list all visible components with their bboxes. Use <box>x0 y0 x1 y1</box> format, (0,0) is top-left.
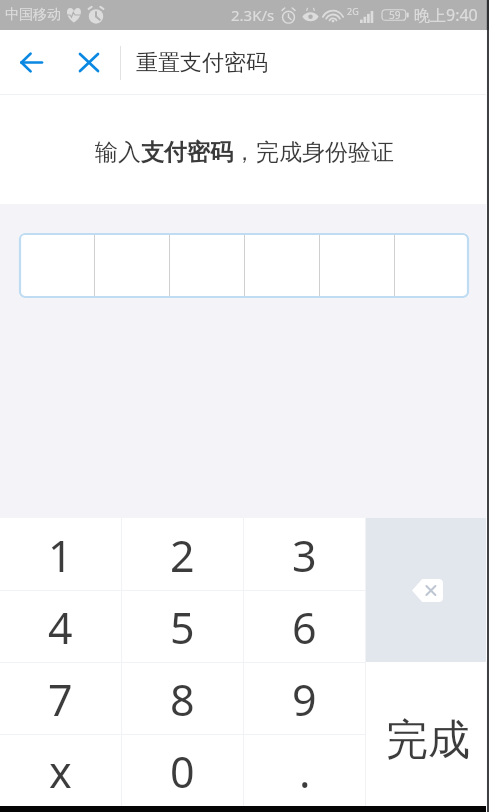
button[interactable]: x <box>0 735 121 806</box>
button[interactable] <box>395 233 469 298</box>
staticText: 59 <box>389 8 401 22</box>
button[interactable]: 5 <box>122 591 243 662</box>
button[interactable]: Back <box>0 30 62 95</box>
button[interactable]: 8 <box>122 663 243 734</box>
staticText: x <box>49 742 72 801</box>
button[interactable]: 9 <box>244 663 365 734</box>
button[interactable]: 4 <box>0 591 121 662</box>
button[interactable] <box>19 233 94 298</box>
button[interactable]: 0 <box>122 735 243 806</box>
button[interactable]: 3 <box>244 518 365 590</box>
button[interactable]: 6 <box>244 591 365 662</box>
staticText: 1 <box>48 526 73 585</box>
staticText: 输入支付密码，完成身份验证 <box>95 138 394 167</box>
staticText: 0 <box>170 742 195 801</box>
staticText: 完成 <box>386 714 470 767</box>
button[interactable]: Close <box>62 30 120 95</box>
staticText: 3 <box>292 526 317 585</box>
staticText: 重置支付密码 <box>136 49 268 77</box>
button[interactable] <box>320 233 394 298</box>
staticText: 晚上9:40 <box>414 4 478 26</box>
button[interactable] <box>95 233 169 298</box>
button[interactable]: Delete <box>366 518 489 662</box>
button[interactable]: 完成 <box>366 662 489 806</box>
staticText: 5 <box>170 598 195 657</box>
button[interactable]: 7 <box>0 663 121 734</box>
button[interactable]: . <box>244 735 365 806</box>
staticText: 2.3K/s <box>231 5 275 25</box>
staticText: . <box>299 742 311 801</box>
button[interactable]: 2 <box>122 518 243 590</box>
staticText: 8 <box>170 670 195 729</box>
staticText: 6 <box>292 598 317 657</box>
button[interactable]: 1 <box>0 518 121 590</box>
staticText: 2 <box>170 526 195 585</box>
staticText: 中国移动 <box>5 6 61 24</box>
staticText: 4 <box>48 598 73 657</box>
button[interactable] <box>170 233 244 298</box>
button[interactable] <box>245 233 319 298</box>
staticText: 2G <box>347 5 359 17</box>
staticText: 9 <box>292 670 317 729</box>
staticText: 7 <box>48 670 73 729</box>
